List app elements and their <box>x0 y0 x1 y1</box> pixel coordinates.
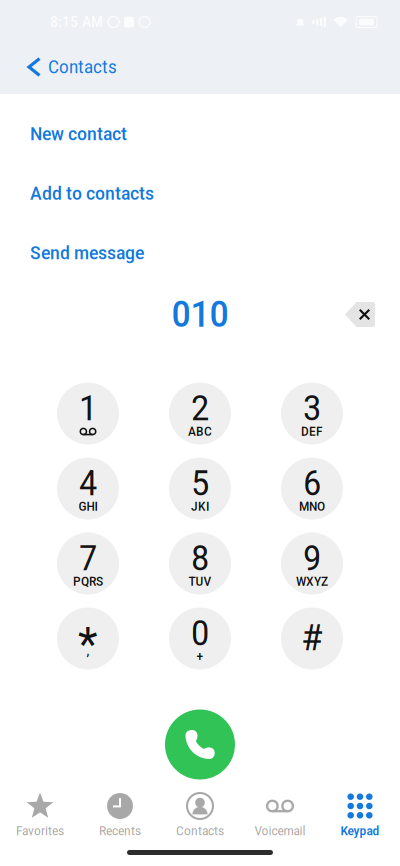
staticText: DEF <box>301 424 323 439</box>
staticText: Contacts <box>176 824 224 838</box>
staticText: JKI <box>191 499 209 514</box>
staticText: Recents <box>99 824 141 838</box>
staticText: ABC <box>188 424 212 439</box>
button[interactable]: Delete <box>345 302 375 327</box>
staticText: + <box>196 649 203 664</box>
staticText: # <box>301 616 323 659</box>
staticText: Favorites <box>16 824 64 838</box>
staticText: 8 <box>191 538 209 579</box>
staticText: 010 <box>171 293 228 336</box>
button[interactable]: Voicemail <box>240 792 320 837</box>
button[interactable]: Send message <box>0 223 400 282</box>
button[interactable]: Recents <box>80 792 160 837</box>
button[interactable]: Contacts <box>160 792 240 837</box>
staticText: Keypad <box>340 824 379 838</box>
staticText: * <box>78 618 98 671</box>
button[interactable]: 4 <box>57 457 119 519</box>
staticText: GHI <box>78 499 97 514</box>
staticText: TUV <box>188 574 211 589</box>
button[interactable]: 5 <box>169 457 231 519</box>
staticText: , <box>86 643 89 658</box>
button[interactable]: # <box>281 607 343 669</box>
staticText: 5 <box>191 463 209 504</box>
button[interactable]: Keypad <box>320 792 400 837</box>
staticText: 1 <box>79 388 97 429</box>
staticText: MNO <box>299 499 325 514</box>
staticText: Contacts <box>48 56 117 78</box>
button[interactable]: 3 <box>281 382 343 444</box>
button[interactable]: * <box>57 607 119 669</box>
staticText: 0 <box>191 613 209 654</box>
button[interactable]: Contacts <box>0 49 131 89</box>
button[interactable]: Favorites <box>0 792 80 837</box>
staticText: 4 <box>79 463 97 504</box>
staticText: New contact <box>30 123 127 145</box>
staticText: 9 <box>303 538 321 579</box>
button[interactable]: 6 <box>281 457 343 519</box>
button[interactable]: 0 <box>169 607 231 669</box>
staticText: 2 <box>191 388 209 429</box>
button[interactable]: 8 <box>169 532 231 594</box>
button[interactable]: New contact <box>0 104 400 163</box>
staticText: WXYZ <box>296 574 328 589</box>
button[interactable]: Add to contacts <box>0 163 400 223</box>
staticText: Send message <box>30 242 144 264</box>
staticText: 8:15 AM <box>50 13 103 31</box>
button[interactable]: 1 <box>57 382 119 444</box>
button[interactable]: 2 <box>169 382 231 444</box>
staticText: Add to contacts <box>30 182 154 204</box>
staticText: Voicemail <box>254 824 305 838</box>
staticText: PQRS <box>73 574 103 589</box>
staticText: 7 <box>79 538 97 579</box>
button[interactable]: 9 <box>281 532 343 594</box>
staticText: 6 <box>303 463 321 504</box>
button[interactable]: 7 <box>57 532 119 594</box>
button[interactable]: Call <box>165 709 235 779</box>
staticText: 3 <box>303 388 321 429</box>
